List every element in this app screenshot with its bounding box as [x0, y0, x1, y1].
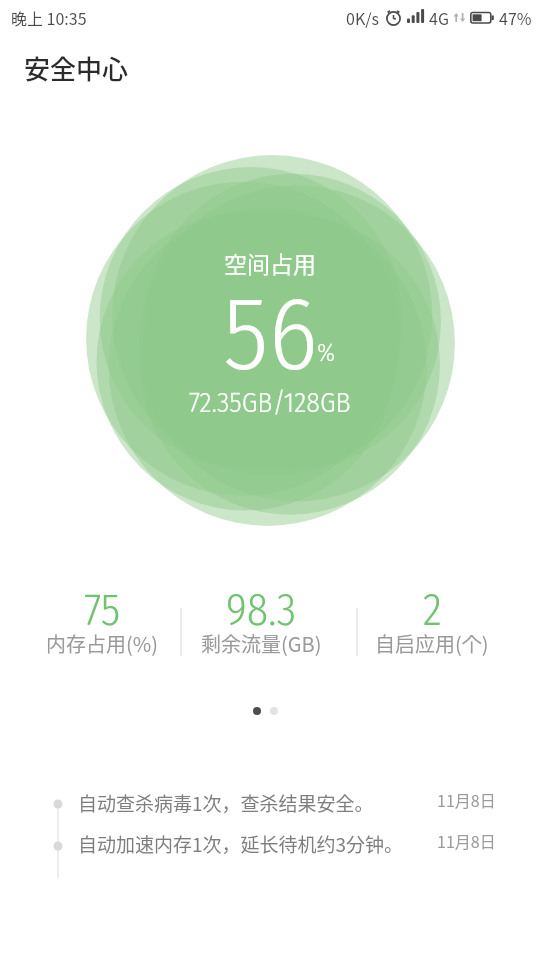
- staticText: 空间占用: [224, 246, 316, 279]
- staticText: 56: [223, 273, 318, 397]
- staticText: 2: [423, 584, 442, 637]
- button[interactable]: 自启应用(个): [322, 629, 540, 658]
- staticText: 0K/s: [346, 6, 379, 29]
- staticText: 72.35GB/128GB: [189, 386, 351, 420]
- button[interactable]: 自动查杀病毒1次，查杀结果安全。: [78, 789, 486, 815]
- staticText: %: [317, 338, 336, 368]
- staticText: 98.3: [226, 584, 297, 637]
- staticText: 11月8日: [437, 788, 496, 811]
- button[interactable]: 自动加速内存1次，延长待机约3分钟。: [78, 830, 486, 856]
- staticText: 自启应用(个): [375, 629, 489, 658]
- staticText: 自动加速内存1次，延长待机约3分钟。: [78, 830, 404, 856]
- staticText: 4G: [429, 6, 449, 29]
- button[interactable]: 98.3: [151, 584, 371, 637]
- button[interactable]: 内存占用(%): [0, 629, 212, 658]
- button[interactable]: 75: [0, 584, 212, 637]
- staticText: 晚上 10:35: [11, 6, 87, 29]
- staticText: 75: [84, 584, 121, 637]
- button[interactable]: 剩余流量(GB): [151, 629, 371, 658]
- staticText: 自动查杀病毒1次，查杀结果安全。: [78, 789, 374, 815]
- staticText: 11月8日: [437, 829, 496, 852]
- staticText: 安全中心: [24, 49, 129, 87]
- staticText: 47%: [499, 6, 532, 29]
- staticText: 剩余流量(GB): [201, 629, 322, 658]
- button[interactable]: 2: [322, 584, 540, 637]
- staticText: 内存占用(%): [46, 629, 158, 658]
